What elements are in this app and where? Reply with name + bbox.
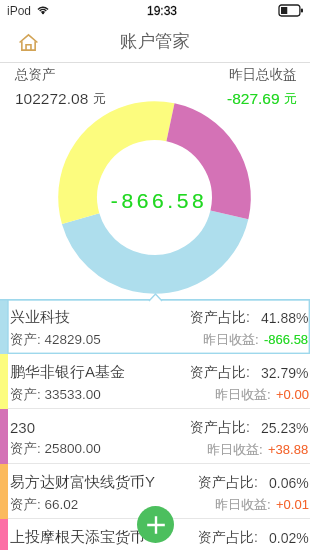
button[interactable]: Add holding bbox=[137, 506, 174, 543]
staticText: 102272.08 bbox=[15, 90, 89, 107]
staticText: 32.79% bbox=[261, 365, 309, 381]
staticText: 41.88% bbox=[261, 310, 309, 326]
staticText: 资产占比: bbox=[190, 364, 250, 382]
staticText: 资产: 25800.00 bbox=[10, 440, 101, 457]
button[interactable]: 230 bbox=[0, 409, 310, 464]
staticText: 资产占比: bbox=[190, 419, 250, 437]
staticText: -827.69 bbox=[227, 90, 280, 107]
staticText: 25.23% bbox=[261, 420, 309, 436]
staticText: 账户管家 bbox=[120, 30, 190, 52]
staticText: 昨日总收益 bbox=[229, 66, 297, 83]
staticText: 昨日收益: bbox=[203, 331, 259, 347]
button[interactable]: 易方达财富快线货币Y bbox=[0, 464, 310, 519]
staticText: 元 bbox=[93, 90, 106, 106]
staticText: 上投摩根天添宝货币 bbox=[10, 528, 145, 547]
staticText: 元 bbox=[284, 90, 297, 106]
button[interactable]: 兴业科技 bbox=[0, 299, 310, 354]
staticText: 资产占比: bbox=[190, 309, 250, 327]
staticText: +38.88 bbox=[268, 442, 309, 457]
staticText: -866.58 bbox=[264, 332, 309, 347]
staticText: 资产占比: bbox=[198, 474, 258, 492]
staticText: 昨日收益: bbox=[215, 496, 271, 512]
staticText: +0.01 bbox=[276, 497, 309, 512]
staticText: 昨日收益: bbox=[215, 386, 271, 402]
staticText: 资产: 42829.05 bbox=[10, 331, 101, 348]
staticText: iPod bbox=[7, 4, 32, 17]
staticText: 鹏华非银行A基金 bbox=[10, 363, 126, 382]
staticText: 兴业科技 bbox=[10, 308, 70, 327]
staticText: 19:33 bbox=[147, 4, 178, 17]
staticText: 昨日收益: bbox=[207, 441, 263, 457]
staticText: -866.58 bbox=[4, 189, 310, 212]
button[interactable]: 上投摩根天添宝货币 bbox=[0, 519, 310, 550]
staticText: 总资产 bbox=[15, 66, 56, 83]
staticText: 资产: 66.02 bbox=[10, 496, 79, 513]
staticText: 0.02% bbox=[269, 530, 309, 546]
button[interactable]: Home bbox=[13, 27, 43, 57]
button[interactable]: 鹏华非银行A基金 bbox=[0, 354, 310, 409]
staticText: 0.06% bbox=[269, 475, 309, 491]
staticText: +0.00 bbox=[276, 387, 309, 402]
staticText: 230 bbox=[10, 419, 36, 436]
staticText: 资产: 33533.00 bbox=[10, 386, 101, 403]
staticText: 资产占比: bbox=[198, 529, 258, 547]
staticText: 易方达财富快线货币Y bbox=[10, 473, 156, 492]
